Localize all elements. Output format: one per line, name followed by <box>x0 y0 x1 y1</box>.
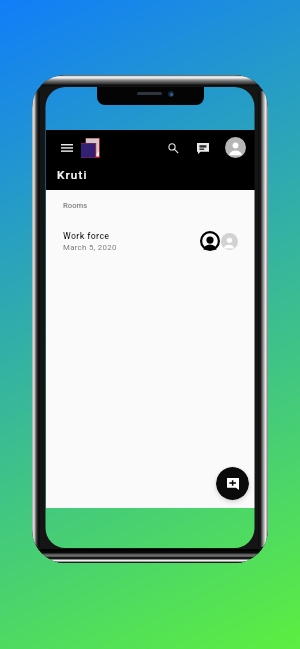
button[interactable]: Open navigation menu <box>57 138 76 157</box>
button[interactable]: Work force <box>46 224 255 258</box>
button[interactable]: Search <box>162 137 184 159</box>
button[interactable]: Messages <box>192 137 214 159</box>
staticText: Rooms <box>63 201 88 210</box>
staticText: Kruti <box>57 168 88 182</box>
button[interactable]: New chat <box>216 467 249 500</box>
staticText: March 5, 2020 <box>63 243 117 252</box>
button[interactable]: Rooms <box>46 197 255 213</box>
button[interactable]: Account <box>225 137 246 158</box>
button[interactable]: Member <box>200 231 220 251</box>
staticText: Work force <box>63 231 110 241</box>
button[interactable]: Member <box>221 233 238 250</box>
